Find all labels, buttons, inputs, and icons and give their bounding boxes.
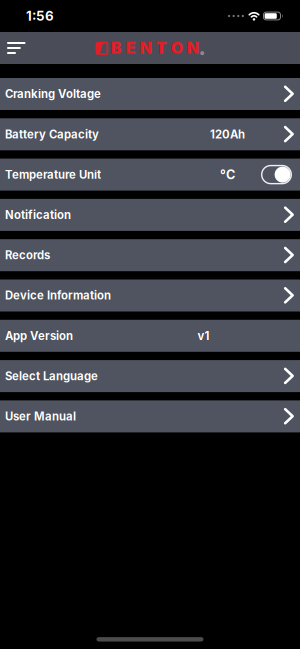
staticText: °C — [220, 167, 235, 182]
staticText: Select Language — [5, 369, 98, 383]
staticText: Cranking Voltage — [5, 87, 101, 101]
staticText: User Manual — [5, 409, 76, 423]
button[interactable]: Device Information — [0, 279, 300, 311]
button[interactable]: Records — [0, 239, 300, 271]
button[interactable]: Cranking Voltage — [0, 78, 300, 110]
staticText: N — [140, 38, 152, 58]
staticText: Battery Capacity — [5, 127, 99, 141]
staticText: B — [111, 38, 122, 58]
button[interactable]: Menu — [0, 32, 40, 64]
staticText: T — [156, 38, 167, 58]
staticText: O — [171, 38, 183, 58]
staticText: 1:56 — [26, 8, 54, 24]
staticText: v1 — [197, 329, 209, 343]
button[interactable]: Battery Capacity — [0, 118, 300, 150]
staticText: N — [187, 38, 199, 58]
staticText: Notification — [5, 208, 71, 222]
staticText: 120Ah — [210, 127, 245, 141]
button[interactable]: User Manual — [0, 400, 300, 432]
staticText: Device Information — [5, 289, 111, 302]
staticText: E — [126, 38, 136, 58]
button[interactable]: Notification — [0, 199, 300, 231]
staticText: Temperature Unit — [5, 168, 101, 181]
button[interactable]: Temperature unit °C — [261, 165, 300, 184]
staticText: Records — [5, 248, 50, 262]
button[interactable]: Select Language — [0, 360, 300, 392]
staticText: App Version — [5, 329, 73, 343]
